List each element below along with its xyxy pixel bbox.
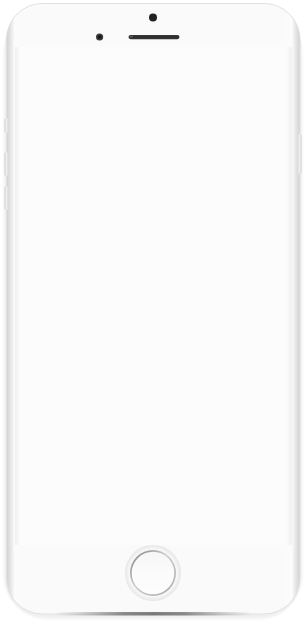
- button[interactable]: White smartphone device mockup with blan…: [0, 0, 306, 620]
